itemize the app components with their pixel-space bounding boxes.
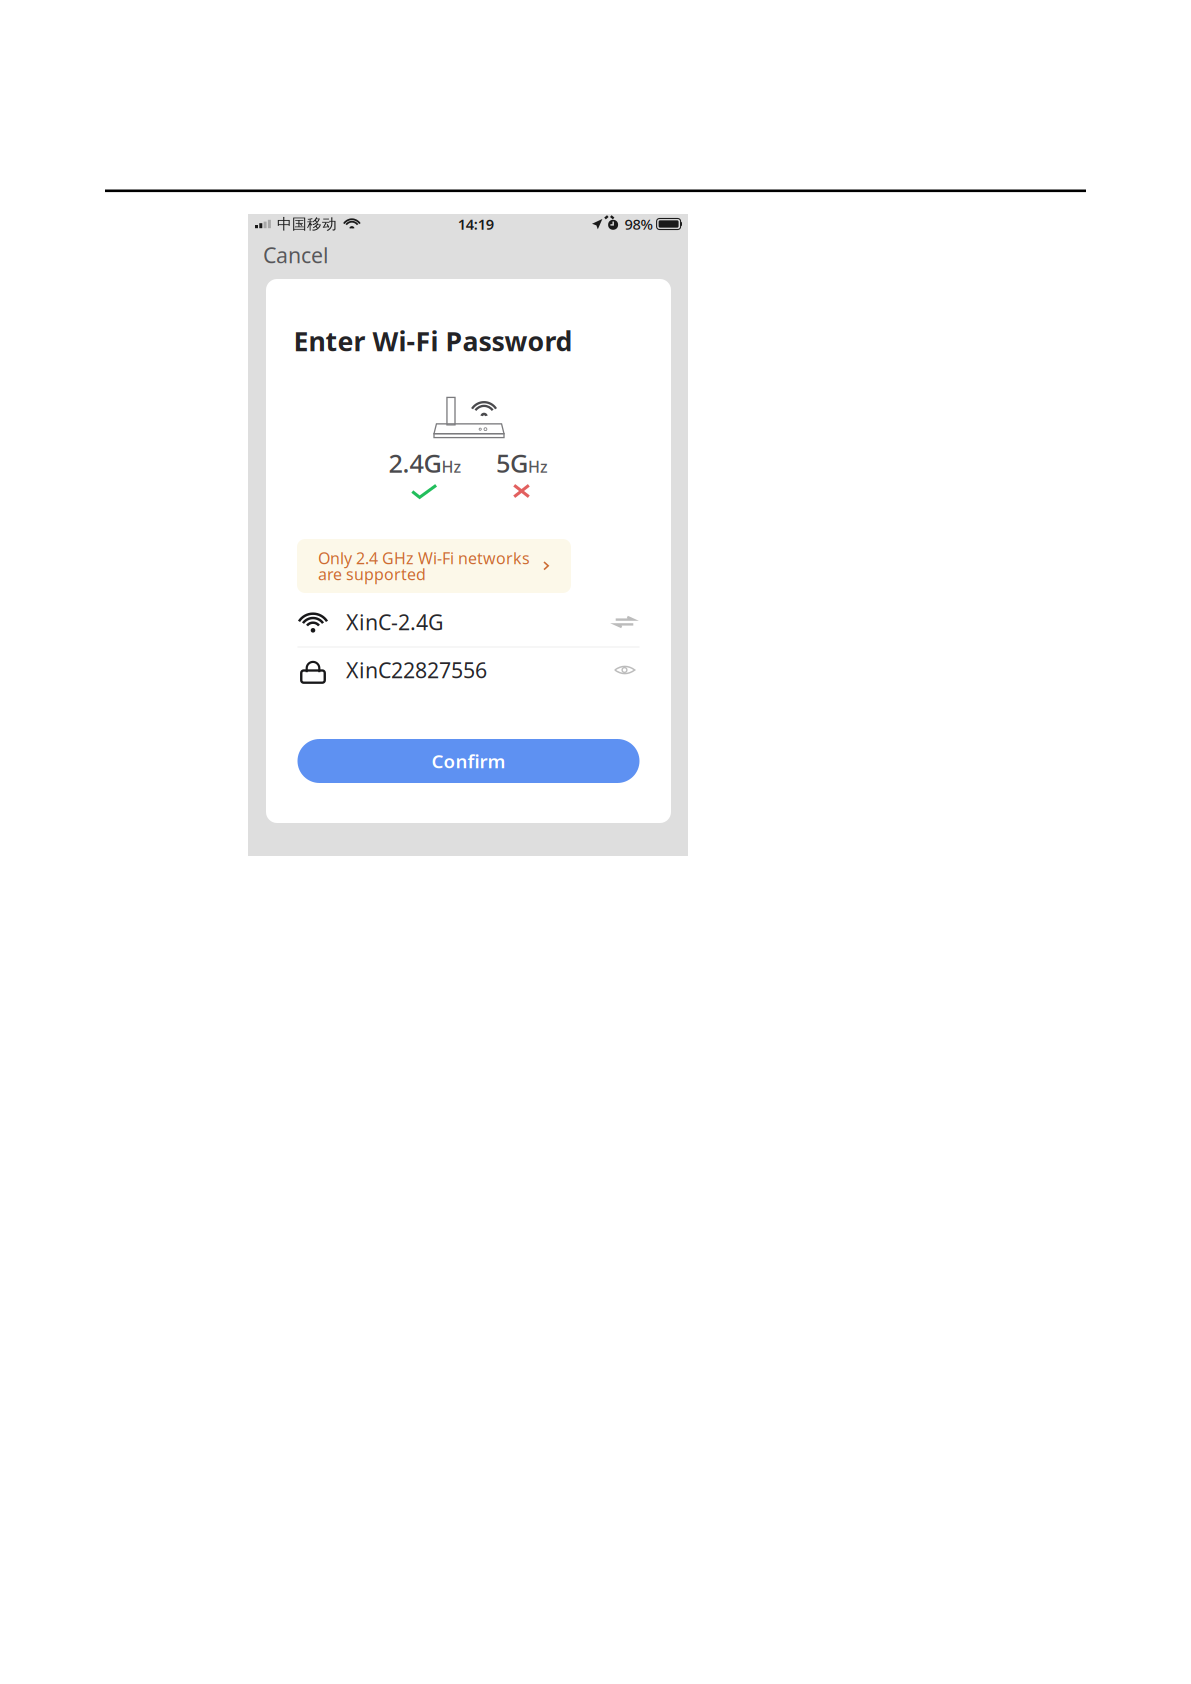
staticText: 2.4G <box>388 446 441 480</box>
staticText: 98% <box>625 214 653 234</box>
staticText: Cancel <box>263 241 329 269</box>
button[interactable]: XinC22827556 <box>266 647 566 693</box>
staticText: 14:19 <box>458 214 494 234</box>
staticText: XinC-2.4G <box>346 608 444 636</box>
button[interactable]: Confirm <box>297 739 639 783</box>
button[interactable]: XinC-2.4G <box>266 599 566 645</box>
button[interactable]: Show password <box>609 647 640 693</box>
staticText: are supported <box>318 563 426 585</box>
button[interactable]: Switch network <box>609 599 640 645</box>
staticText: 5G <box>496 446 528 480</box>
staticText: Hz <box>441 456 461 477</box>
button[interactable]: Cancel <box>261 236 331 274</box>
staticText: Enter Wi-Fi Password <box>293 323 572 359</box>
staticText: Only 2.4 GHz Wi-Fi networks <box>318 547 530 569</box>
staticText: 中国移动 <box>277 215 337 233</box>
staticText: Confirm <box>431 749 505 773</box>
button[interactable]: Only 2.4 GHz Wi-Fi networks <box>297 539 571 593</box>
staticText: Hz <box>528 456 548 477</box>
staticText: XinC22827556 <box>346 656 487 684</box>
